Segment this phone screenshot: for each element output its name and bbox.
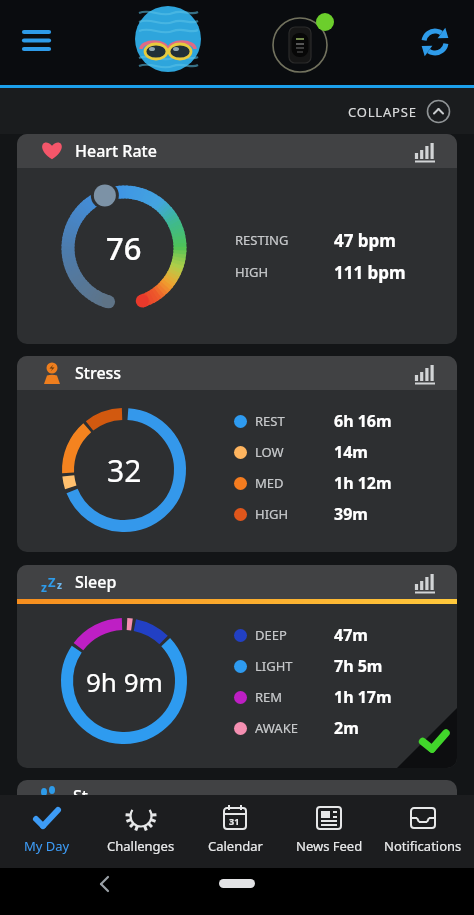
button[interactable] [135, 6, 201, 72]
button[interactable] [98, 877, 112, 891]
button[interactable] [418, 25, 452, 59]
staticText: 32 [107, 450, 142, 491]
button[interactable]: Notifications [376, 795, 470, 868]
staticText: AWAKE [255, 719, 334, 737]
button[interactable]: Heart Rate [17, 134, 457, 168]
button[interactable]: Stress [17, 356, 457, 390]
staticText: 39m [334, 503, 368, 525]
staticText: z [41, 579, 47, 595]
staticText: My Day [24, 837, 70, 855]
staticText: 14m [334, 441, 368, 463]
button[interactable]: Heart Rate [17, 134, 457, 344]
staticText: 7h 5m [334, 655, 383, 677]
button[interactable]: COLLAPSE [348, 100, 450, 123]
staticText: Sleep [75, 571, 117, 593]
button[interactable] [272, 16, 328, 72]
button[interactable]: 31 [188, 795, 282, 868]
staticText: 47 bpm [334, 229, 396, 252]
staticText: Notifications [384, 837, 462, 855]
staticText: News Feed [296, 837, 363, 855]
staticText: REM [255, 688, 334, 706]
button[interactable]: z [17, 565, 457, 599]
staticText: 31 [229, 815, 240, 827]
staticText: DEEP [255, 626, 334, 644]
staticText: COLLAPSE [348, 103, 417, 121]
staticText: Challenges [107, 837, 175, 855]
button[interactable]: My Day [0, 795, 94, 868]
staticText: LOW [255, 443, 334, 461]
button[interactable]: Stress [17, 356, 457, 552]
staticText: HIGH [255, 505, 334, 523]
staticText: 1h 17m [334, 686, 392, 708]
staticText: REST [255, 412, 334, 430]
staticText: 111 bpm [334, 261, 406, 284]
staticText: 1h 12m [334, 472, 392, 494]
staticText: Heart Rate [75, 140, 157, 162]
staticText: Calendar [208, 837, 263, 855]
button[interactable]: News Feed [282, 795, 376, 868]
staticText: Z [48, 573, 56, 591]
button[interactable]: Challenges [94, 795, 188, 868]
button[interactable] [24, 30, 50, 52]
staticText: LIGHT [255, 657, 334, 675]
staticText: St [73, 785, 88, 795]
staticText: z [57, 578, 62, 592]
button[interactable]: z [17, 565, 457, 768]
staticText: HIGH [235, 263, 334, 281]
button[interactable] [219, 879, 255, 888]
staticText: 6h 16m [334, 410, 392, 432]
staticText: 76 [106, 227, 142, 269]
staticText: 2m [334, 717, 359, 739]
staticText: MED [255, 474, 334, 492]
staticText: 9h 9m [86, 664, 163, 699]
staticText: Stress [75, 362, 122, 384]
staticText: RESTING [235, 231, 334, 249]
staticText: 47m [334, 624, 368, 646]
